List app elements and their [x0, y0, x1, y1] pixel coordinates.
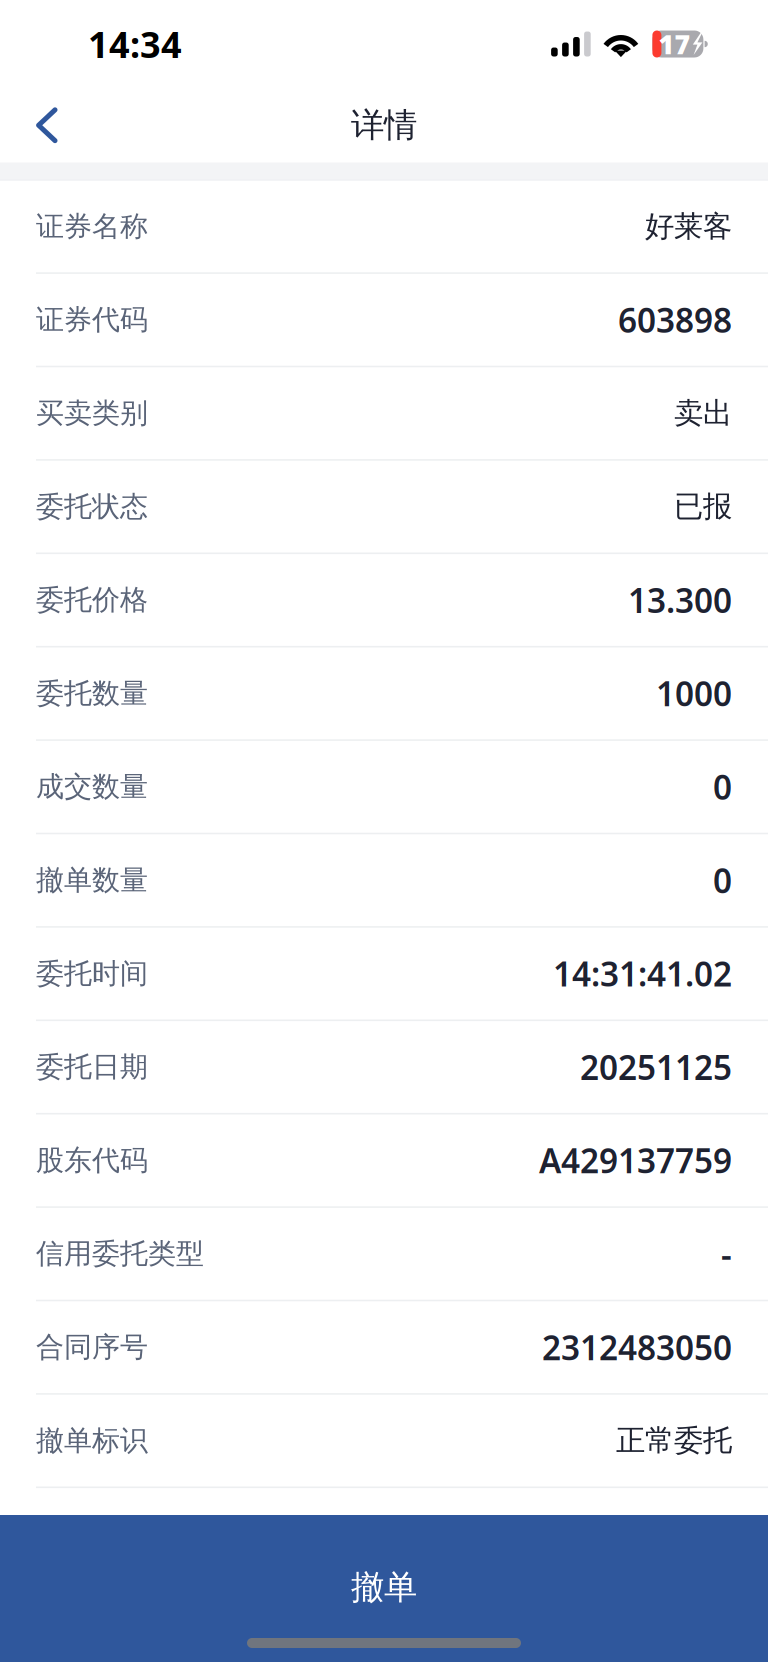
- staticText: 成交数量: [36, 770, 148, 804]
- staticText: 撤单数量: [36, 863, 148, 897]
- staticText: 股东代码: [36, 1143, 148, 1178]
- staticText: 1000: [656, 671, 732, 716]
- staticText: 合同序号: [36, 1330, 148, 1364]
- staticText: 20251125: [580, 1045, 732, 1089]
- staticText: 证券名称: [36, 209, 148, 244]
- staticText: 信用委托类型: [36, 1237, 204, 1271]
- staticText: 13.300: [628, 578, 732, 622]
- staticText: -: [721, 1232, 732, 1276]
- staticText: 撤单: [351, 1567, 417, 1608]
- button[interactable]: 返回: [0, 89, 94, 161]
- staticText: 委托时间: [36, 956, 148, 991]
- staticText: 0: [713, 858, 732, 902]
- staticText: 已报: [674, 489, 732, 525]
- staticText: 委托数量: [36, 676, 148, 711]
- staticText: 好莱客: [645, 208, 732, 244]
- staticText: 撤单标识: [36, 1423, 148, 1458]
- staticText: 委托价格: [36, 583, 148, 617]
- staticText: 详情: [351, 105, 417, 146]
- staticText: 14:31:41.02: [553, 951, 732, 996]
- staticText: 正常委托: [616, 1423, 732, 1459]
- staticText: A429137759: [539, 1138, 732, 1183]
- staticText: 2312483050: [542, 1325, 732, 1369]
- staticText: 14:34: [88, 20, 182, 68]
- staticText: 卖出: [674, 395, 732, 431]
- button[interactable]: 撤单: [0, 1515, 768, 1662]
- staticText: 17: [658, 26, 690, 62]
- staticText: 委托状态: [36, 489, 148, 524]
- staticText: 0: [713, 765, 732, 809]
- staticText: 603898: [618, 298, 732, 342]
- staticText: 委托日期: [36, 1050, 148, 1084]
- staticText: 买卖类别: [36, 396, 148, 430]
- staticText: 证券代码: [36, 303, 148, 337]
